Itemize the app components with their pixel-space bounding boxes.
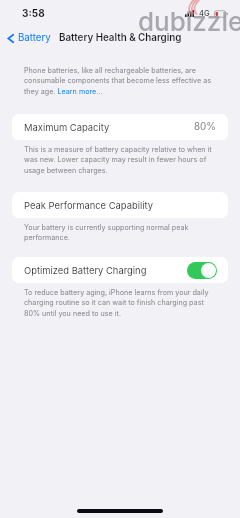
- staticText: 80%: [194, 121, 216, 133]
- staticText: dubizzle: [138, 6, 240, 37]
- staticText: Peak Performance Capability: [24, 200, 154, 211]
- button[interactable]: Maximum Capacity: [12, 114, 228, 140]
- staticText: 3:58: [22, 7, 45, 19]
- button[interactable]: Optimized Battery Charging toggle: [187, 262, 217, 279]
- staticText: Maximum Capacity: [24, 122, 110, 133]
- staticText: To reduce battery aging, iPhone learns f…: [24, 288, 217, 318]
- staticText: 4G: [199, 9, 210, 18]
- button[interactable]: Battery: [5, 31, 52, 45]
- staticText: This is a measure of battery capacity re…: [24, 145, 217, 175]
- staticText: Optimized Battery Charging: [24, 265, 147, 276]
- staticText: Battery Health & Charging: [59, 32, 182, 44]
- staticText: Battery: [18, 32, 51, 44]
- button[interactable]: Optimized Battery Charging: [12, 257, 228, 283]
- staticText: Your battery is currently supporting nor…: [24, 223, 217, 242]
- button[interactable]: Peak Performance Capability: [12, 192, 228, 218]
- staticText: Phone batteries, like all rechargeable b…: [24, 66, 217, 96]
